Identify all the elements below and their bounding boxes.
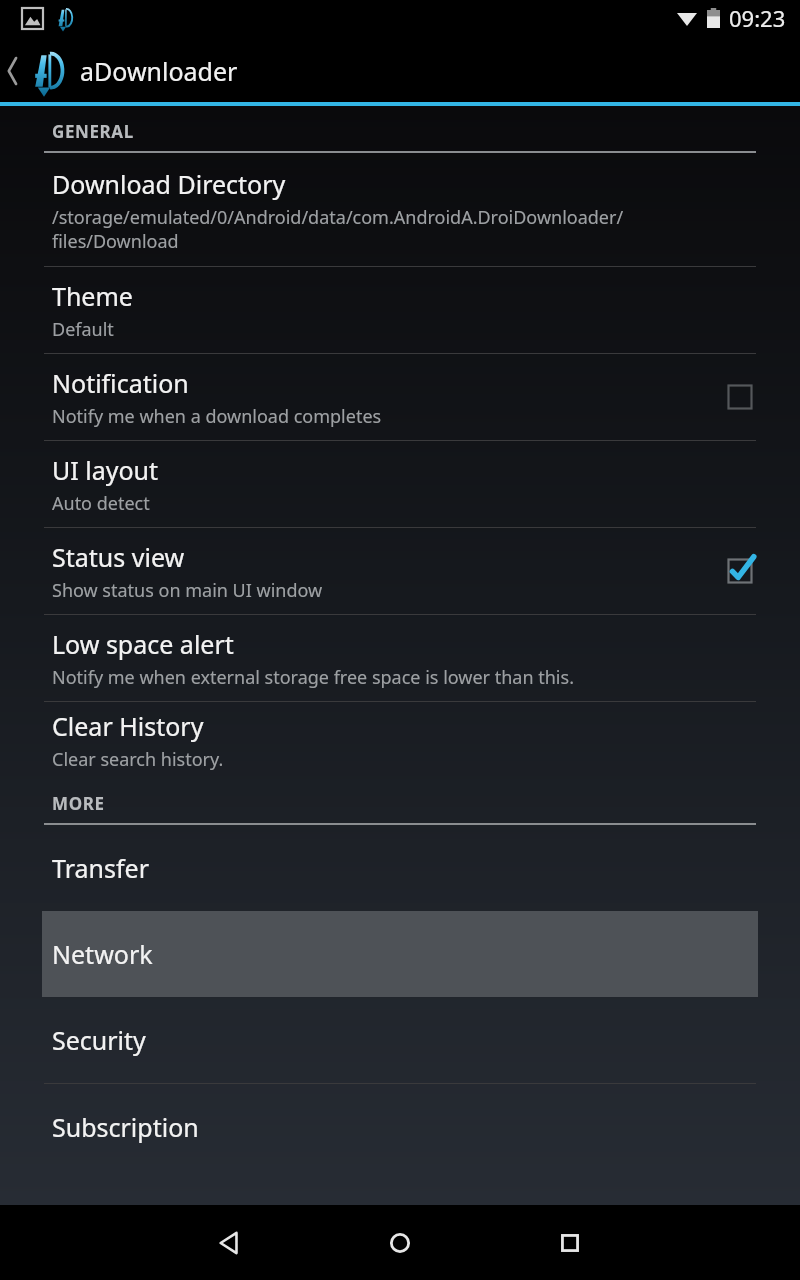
button[interactable]: Download Directory xyxy=(0,153,800,266)
button[interactable]: Home xyxy=(382,1225,418,1261)
staticText: /storage/emulated/0/Android/data/com.And… xyxy=(52,205,624,253)
staticText: Download Directory xyxy=(52,167,286,201)
staticText: Status view xyxy=(52,540,185,574)
staticText: Network xyxy=(52,937,153,971)
staticText: Clear search history. xyxy=(52,747,224,772)
staticText: Subscription xyxy=(52,1110,199,1144)
staticText: MORE xyxy=(52,792,105,815)
button[interactable]: Notification xyxy=(0,354,800,440)
button[interactable]: Security xyxy=(0,997,800,1083)
button[interactable]: UI layout xyxy=(0,441,800,527)
staticText: Clear History xyxy=(52,709,204,743)
staticText: UI layout xyxy=(52,453,159,487)
button[interactable]: Theme xyxy=(0,267,800,353)
button[interactable]: Subscription xyxy=(0,1084,800,1170)
staticText: Auto detect xyxy=(52,491,150,516)
staticText: aDownloader xyxy=(80,54,238,88)
button[interactable]: Back xyxy=(212,1225,248,1261)
staticText: Show status on main UI window xyxy=(52,578,323,603)
button[interactable]: Transfer xyxy=(0,825,800,911)
staticText: 09:23 xyxy=(729,3,786,33)
button[interactable]: Status view xyxy=(0,528,800,614)
button[interactable]: Navigate up xyxy=(0,48,74,94)
button[interactable]: Recent apps xyxy=(552,1225,588,1261)
staticText: Notify me when a download completes xyxy=(52,404,382,429)
button[interactable]: Low space alert xyxy=(0,615,800,701)
button[interactable]: Clear History xyxy=(0,702,800,778)
staticText: Notify me when external storage free spa… xyxy=(52,665,574,690)
staticText: Security xyxy=(52,1023,146,1057)
button[interactable]: Network xyxy=(0,911,800,997)
staticText: Transfer xyxy=(52,851,149,885)
staticText: Notification xyxy=(52,366,189,400)
staticText: Low space alert xyxy=(52,627,234,661)
staticText: Theme xyxy=(52,279,133,313)
staticText: GENERAL xyxy=(52,120,134,143)
staticText: Default xyxy=(52,317,114,342)
